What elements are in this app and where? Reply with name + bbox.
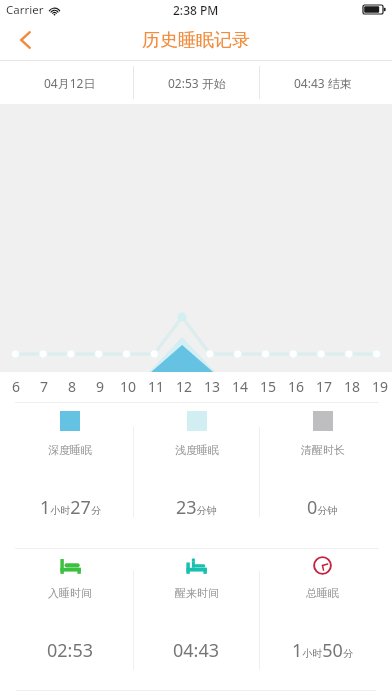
staticText: 04月12日 <box>44 75 96 91</box>
staticText: 19 <box>372 377 389 396</box>
staticText: 18 <box>344 377 361 396</box>
staticText: 02:53 开始 <box>168 75 226 91</box>
staticText: 14 <box>232 377 249 396</box>
staticText: 04:43 <box>173 638 220 663</box>
button[interactable]: 浅度睡眠 <box>134 403 259 529</box>
button[interactable]: 醒来时间 <box>134 549 259 679</box>
staticText: 历史睡眠记录 <box>142 29 250 52</box>
staticText: 23分钟 <box>176 495 217 520</box>
staticText: 总睡眠 <box>306 586 339 600</box>
staticText: 6 <box>12 377 21 396</box>
button[interactable]: 04:43 结束 <box>260 61 385 104</box>
staticText: 9 <box>96 377 105 396</box>
staticText: 10 <box>120 377 137 396</box>
staticText: 醒来时间 <box>175 586 219 600</box>
staticText: 13 <box>204 377 221 396</box>
staticText: 清醒时长 <box>301 443 345 457</box>
staticText: 16 <box>288 377 305 396</box>
staticText: 8 <box>68 377 77 396</box>
staticText: 1小时27分 <box>40 495 101 520</box>
button[interactable]: Back <box>0 20 48 61</box>
button[interactable]: 入睡时间 <box>7 549 133 679</box>
staticText: 2:38 PM <box>173 2 219 18</box>
button[interactable]: 04月12日 <box>7 61 133 104</box>
staticText: 入睡时间 <box>48 586 92 600</box>
button[interactable]: 02:53 开始 <box>134 61 259 104</box>
staticText: Carrier <box>6 2 44 18</box>
button[interactable]: 总睡眠 <box>260 549 385 679</box>
staticText: 04:43 结束 <box>294 75 352 91</box>
staticText: 02:53 <box>47 638 94 663</box>
staticText: 11 <box>148 377 165 396</box>
staticText: 1小时50分 <box>292 638 353 663</box>
staticText: 15 <box>260 377 277 396</box>
button[interactable]: 清醒时长 <box>260 403 385 529</box>
button[interactable]: 深度睡眠 <box>7 403 133 529</box>
staticText: 浅度睡眠 <box>175 443 219 457</box>
staticText: 0分钟 <box>307 495 338 520</box>
staticText: 17 <box>316 377 333 396</box>
staticText: 深度睡眠 <box>48 443 92 457</box>
staticText: 12 <box>176 377 193 396</box>
staticText: 7 <box>40 377 49 396</box>
